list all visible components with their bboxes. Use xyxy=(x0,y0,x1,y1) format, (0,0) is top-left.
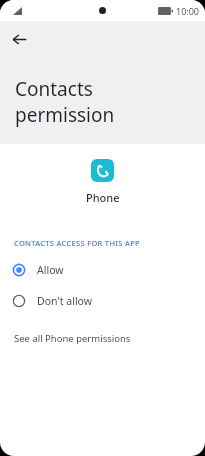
staticText: Allow xyxy=(37,263,64,277)
button[interactable]: See all Phone permissions xyxy=(0,328,205,348)
button[interactable]: Back xyxy=(6,26,32,52)
staticText: Don't allow xyxy=(37,294,92,308)
staticText: Phone xyxy=(86,190,120,205)
staticText: See all Phone permissions xyxy=(14,332,131,345)
staticText: 10:00 xyxy=(176,5,200,17)
staticText: permission xyxy=(15,102,115,128)
button[interactable]: Don't allow xyxy=(0,290,205,312)
staticText: CONTACTS ACCESS FOR THIS APP xyxy=(14,238,140,248)
staticText: Contacts xyxy=(15,76,93,102)
button[interactable]: Allow xyxy=(0,259,205,281)
